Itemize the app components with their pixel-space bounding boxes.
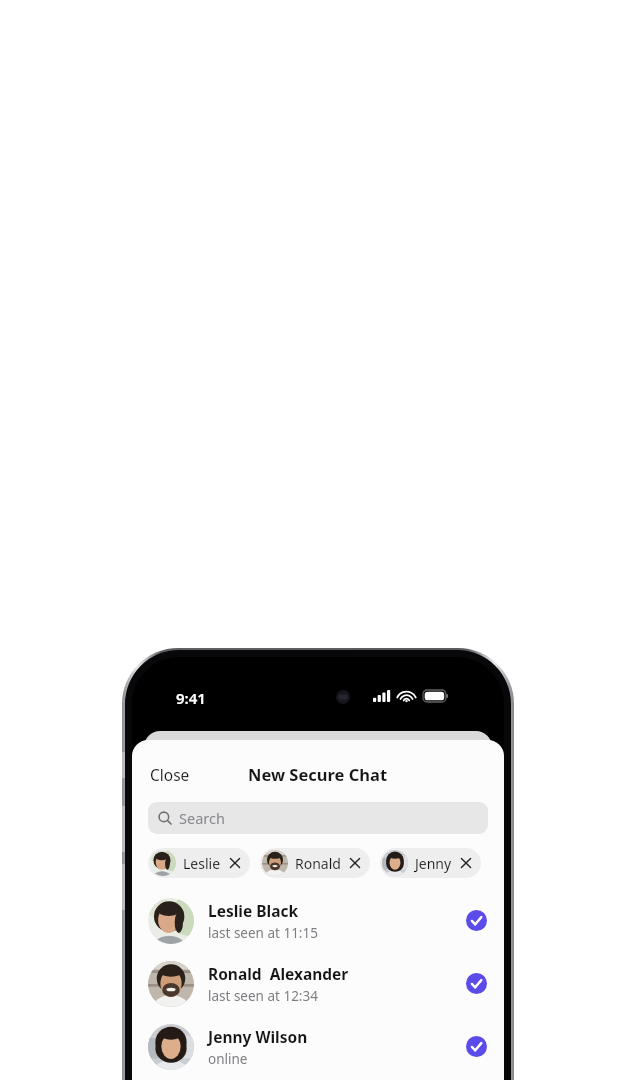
other: Selected Ronald Alexander — [466, 973, 487, 994]
other: Remove Jenny — [460, 857, 472, 869]
staticText: Search — [179, 808, 225, 828]
button[interactable]: Leslie Black — [132, 889, 504, 952]
staticText: Jenny — [415, 854, 452, 873]
staticText: last seen at 12:34 — [208, 987, 318, 1005]
staticText: Leslie — [183, 854, 221, 873]
other: Remove Leslie — [229, 857, 241, 869]
other: Selected Jenny Wilson — [466, 1036, 487, 1057]
staticText: Jenny Wilson — [208, 1026, 308, 1047]
staticText: 9:41 — [176, 688, 206, 708]
staticText: New Secure Chat — [248, 763, 388, 785]
other: Selected Leslie Black — [466, 910, 487, 931]
staticText: online — [208, 1050, 248, 1068]
staticText: Close — [150, 764, 190, 785]
other: Remove Ronald — [349, 857, 361, 869]
button[interactable]: Leslie — [148, 848, 250, 878]
button[interactable]: Ronald — [260, 848, 370, 878]
staticText: Ronald Alexander — [208, 963, 349, 984]
button[interactable]: Ronald Alexander — [132, 952, 504, 1015]
button[interactable]: Jenny — [380, 848, 481, 878]
staticText: Ronald — [295, 854, 341, 873]
button[interactable]: Jenny Wilson — [132, 1015, 504, 1078]
staticText: Leslie Black — [208, 900, 299, 921]
button[interactable]: Search — [148, 802, 488, 834]
staticText: last seen at 11:15 — [208, 924, 318, 942]
button[interactable]: Close — [148, 760, 192, 789]
